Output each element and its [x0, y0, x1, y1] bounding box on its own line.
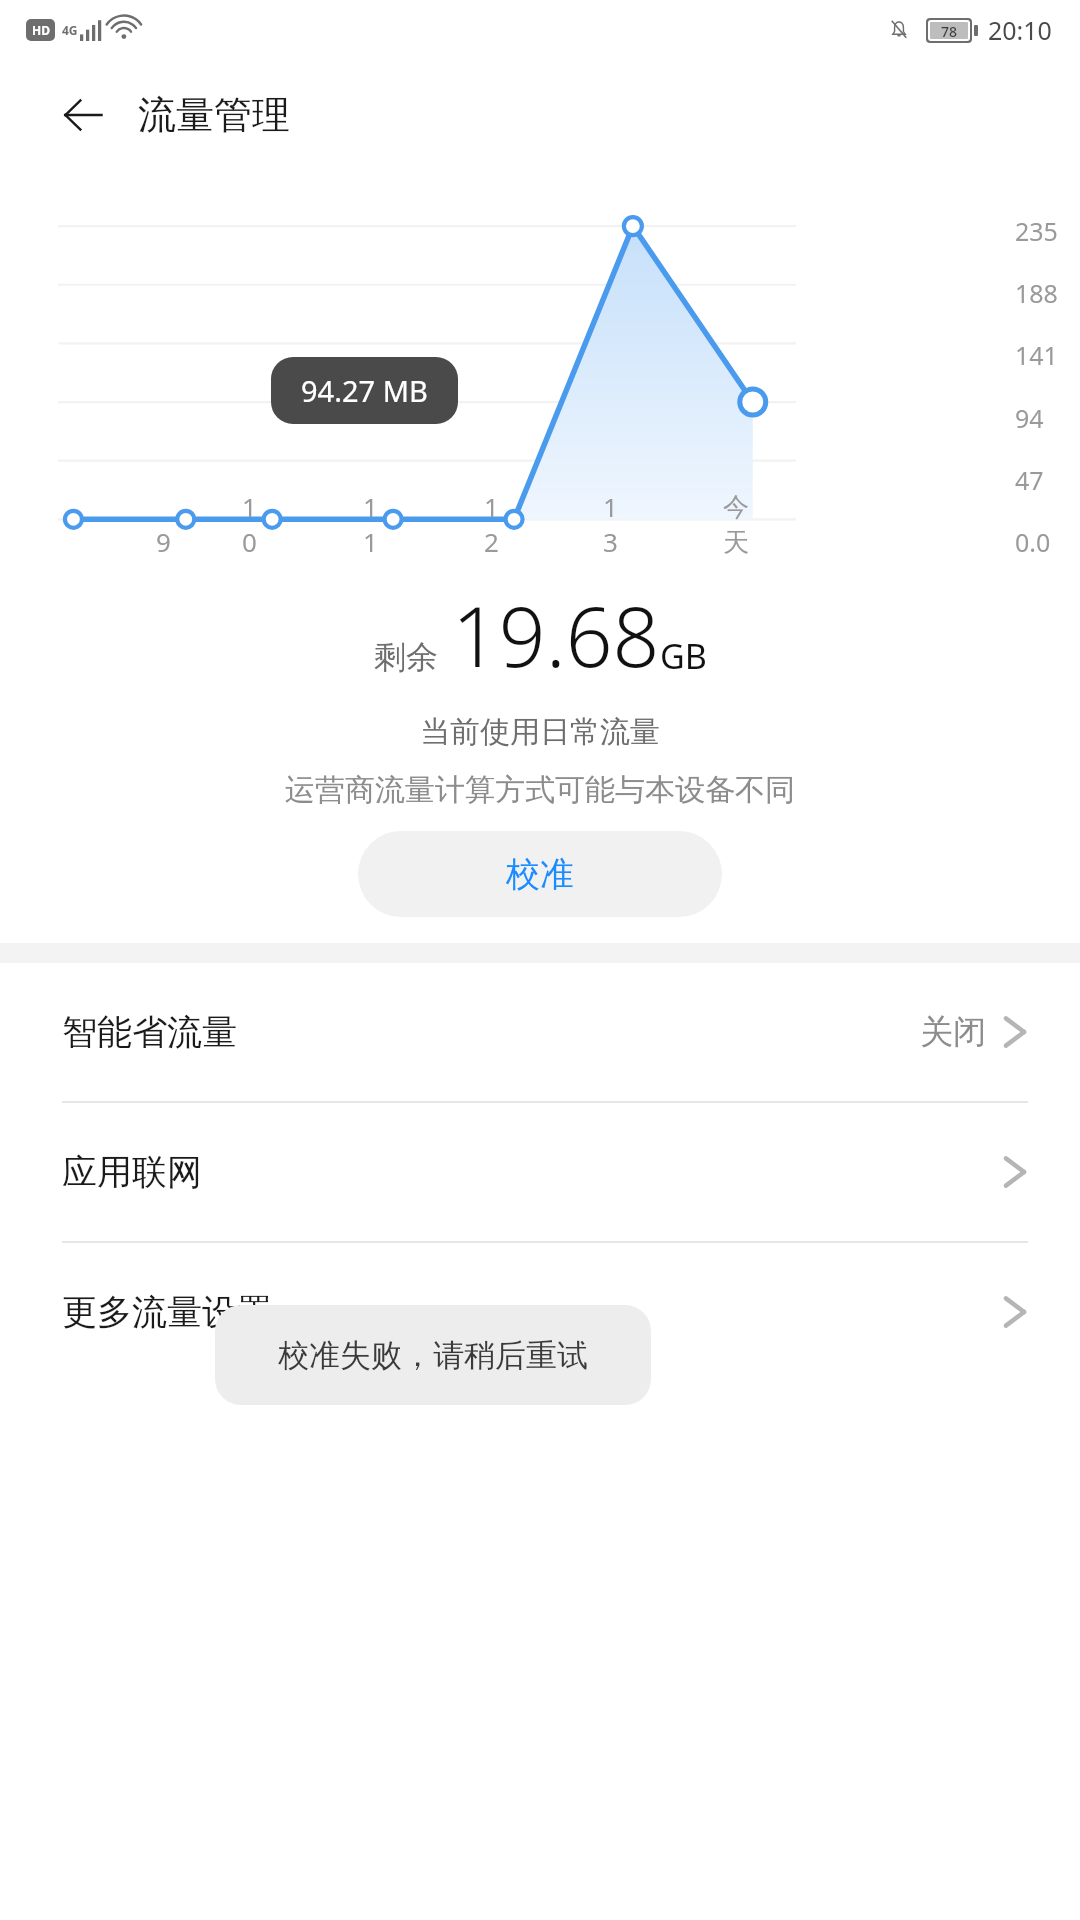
staticText: 20:10 [988, 13, 1052, 47]
staticText: 应用联网 [62, 1150, 202, 1194]
button[interactable]: Back [50, 82, 116, 148]
staticText: 188 [1015, 276, 1058, 310]
staticText: 94 [1015, 401, 1044, 435]
staticText: 更多流量设置 [62, 1290, 272, 1334]
staticText: 78 [941, 22, 958, 39]
staticText: 4G [62, 22, 78, 38]
staticText: 流量管理 [138, 91, 290, 139]
staticText: 当前使用日常流量 [0, 713, 1080, 751]
staticText: HD [32, 22, 50, 38]
staticText: 19.68 [452, 579, 660, 691]
staticText: 关闭 [920, 1011, 986, 1053]
button[interactable]: 校准 [358, 831, 722, 917]
staticText: 141 [1015, 338, 1058, 372]
button[interactable]: 更多流量设置 [0, 1243, 1080, 1381]
staticText: 47 [1015, 463, 1044, 497]
staticText: 94.27 MB [301, 371, 428, 410]
staticText: 235 [1015, 214, 1058, 248]
staticText: 校准 [506, 853, 574, 896]
staticText: 运营商流量计算方式可能与本设备不同 [0, 771, 1080, 809]
staticText: 校准失败，请稍后重试 [278, 1336, 588, 1375]
staticText: 智能省流量 [62, 1010, 237, 1054]
button[interactable]: 应用联网 [0, 1103, 1080, 1241]
button[interactable]: 智能省流量 [0, 963, 1080, 1101]
staticText: 剩余 [374, 637, 438, 677]
staticText: GB [660, 633, 707, 679]
staticText: 0.0 [1015, 525, 1051, 559]
